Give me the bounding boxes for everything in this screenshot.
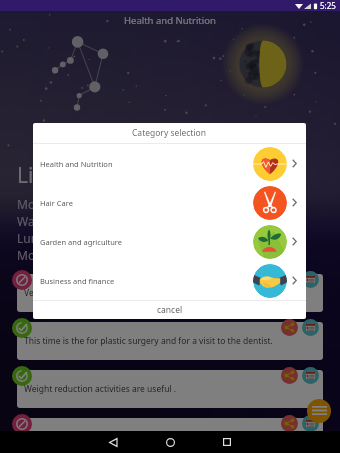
button[interactable]: Unfavourable day xyxy=(12,414,32,434)
button[interactable]: Health and Nutrition xyxy=(33,144,306,183)
button[interactable]: Calendar xyxy=(302,271,319,288)
staticText: Moon phase today xyxy=(17,196,122,213)
staticText: Hair Care xyxy=(40,198,253,208)
button[interactable]: Share xyxy=(281,271,298,288)
staticText: Library xyxy=(17,161,86,190)
button[interactable]: Hair Care xyxy=(33,183,306,222)
staticText: Vegetables are good for health . xyxy=(24,287,152,299)
button[interactable]: Garden and agriculture xyxy=(33,222,306,261)
staticText: Category selection xyxy=(132,127,207,139)
button[interactable]: Calendar xyxy=(302,415,319,432)
staticText: This time is the for plastic surgery and… xyxy=(24,335,273,347)
button[interactable]: Share xyxy=(281,415,298,432)
staticText: Business and finance xyxy=(40,276,253,286)
staticText: Haircut is not advisable . xyxy=(24,430,122,442)
staticText: Garden and agriculture xyxy=(40,237,253,247)
button[interactable]: Share xyxy=(281,319,298,336)
button[interactable]: Calendar xyxy=(302,319,319,336)
staticText: Health and Nutrition xyxy=(124,14,216,27)
button[interactable]: Vegetables are good for health . xyxy=(17,274,323,312)
button[interactable]: This time is the for plastic surgery and… xyxy=(17,322,323,360)
button[interactable]: Favourable day xyxy=(12,366,32,386)
button[interactable]: Open menu xyxy=(307,399,331,423)
button[interactable]: Unfavourable day xyxy=(12,270,32,290)
button[interactable]: Weight reduction activities are useful . xyxy=(17,370,323,408)
staticText: 5:25 xyxy=(320,0,336,11)
button[interactable]: cancel xyxy=(33,301,306,319)
staticText: Lunar day 10 xyxy=(17,230,91,247)
staticText: Waxing Gibbous Moon xyxy=(17,213,145,230)
button[interactable]: Haircut is not advisable . xyxy=(17,418,323,453)
staticText: cancel xyxy=(157,304,183,316)
button[interactable]: Calendar xyxy=(302,367,319,384)
button[interactable]: Back xyxy=(91,431,135,453)
button[interactable]: Recents xyxy=(205,431,249,453)
staticText: Weight reduction activities are useful . xyxy=(24,383,177,395)
button[interactable]: Favourable day xyxy=(12,318,32,338)
button[interactable]: Home xyxy=(148,431,192,453)
button[interactable]: Business and finance xyxy=(33,261,306,300)
staticText: Moonrise at 14:02 xyxy=(17,247,119,264)
button[interactable]: Share xyxy=(281,367,298,384)
staticText: Health and Nutrition xyxy=(40,159,253,169)
